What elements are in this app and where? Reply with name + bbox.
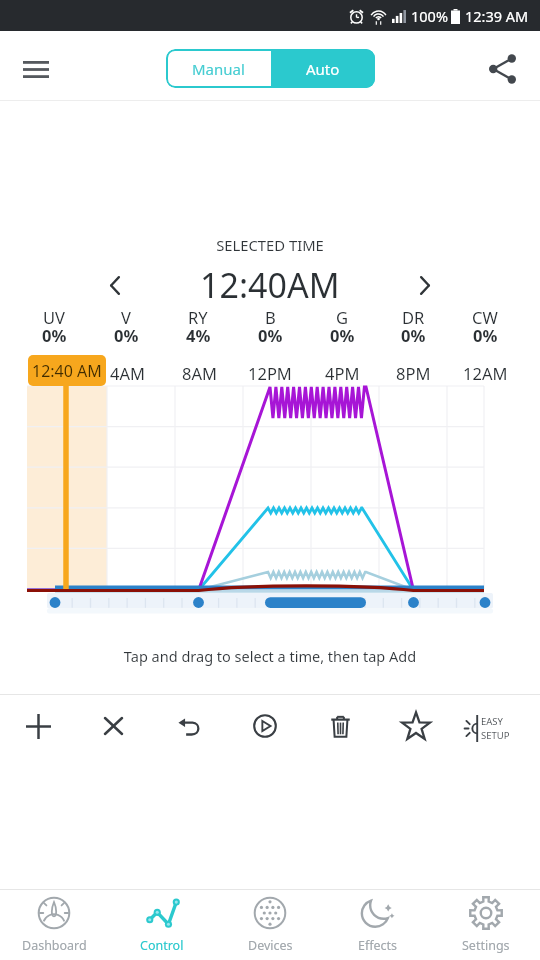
button[interactable]: UV xyxy=(20,306,88,346)
button[interactable]: CW xyxy=(451,306,519,346)
button[interactable]: Share xyxy=(478,45,526,93)
button[interactable]: B xyxy=(236,306,304,346)
button[interactable]: Auto xyxy=(271,49,375,88)
staticText: 4% xyxy=(186,324,211,346)
staticText: 12:40AM xyxy=(200,262,340,308)
button[interactable]: Undo xyxy=(163,700,215,752)
staticText: 12:39 AM xyxy=(465,6,529,26)
staticText: Settings xyxy=(462,937,510,954)
staticText: 0% xyxy=(114,324,139,346)
button[interactable]: G xyxy=(308,306,376,346)
staticText: V xyxy=(121,306,131,328)
staticText: SELECTED TIME xyxy=(0,235,540,255)
staticText: Control xyxy=(140,937,184,954)
staticText: CW xyxy=(472,306,498,328)
button[interactable]: DR xyxy=(379,306,447,346)
button[interactable]: Devices xyxy=(216,890,324,960)
button[interactable]: Easy setup xyxy=(464,703,534,753)
button[interactable]: Settings xyxy=(432,890,540,960)
button[interactable]: V xyxy=(92,306,160,346)
button[interactable]: Next time xyxy=(405,265,445,305)
button[interactable]: Control xyxy=(108,890,216,960)
button[interactable]: Favorite xyxy=(390,700,442,752)
staticText: Dashboard xyxy=(22,937,87,954)
staticText: UV xyxy=(43,306,65,328)
staticText: Auto xyxy=(306,59,340,79)
staticText: G xyxy=(336,306,349,328)
button[interactable]: Delete xyxy=(314,700,366,752)
staticText: B xyxy=(265,306,276,328)
button[interactable]: Close xyxy=(87,700,139,752)
staticText: 4AM xyxy=(110,362,145,384)
button[interactable]: Dashboard xyxy=(0,890,108,960)
staticText: 100% xyxy=(411,6,448,26)
staticText: 12AM xyxy=(463,362,508,384)
button[interactable]: Effects xyxy=(324,890,432,960)
staticText: 0% xyxy=(473,324,498,346)
staticText: 0% xyxy=(330,324,355,346)
staticText: 0% xyxy=(42,324,67,346)
staticText: 0% xyxy=(258,324,283,346)
staticText: SETUP xyxy=(481,729,510,742)
staticText: Tap and drag to select a time, then tap … xyxy=(0,646,540,666)
staticText: Manual xyxy=(192,59,245,79)
button[interactable]: Add xyxy=(12,700,64,752)
staticText: 4PM xyxy=(325,362,360,384)
staticText: 8AM xyxy=(182,362,217,384)
staticText: 12:40 AM xyxy=(32,360,102,382)
staticText: 8PM xyxy=(396,362,431,384)
staticText: Effects xyxy=(358,937,398,954)
staticText: 12PM xyxy=(248,362,292,384)
staticText: EASY xyxy=(481,715,503,728)
button[interactable]: Menu xyxy=(12,45,60,93)
button[interactable]: 12:40 AM xyxy=(28,355,106,386)
button[interactable]: Manual xyxy=(166,49,271,88)
button[interactable]: Previous time xyxy=(95,265,135,305)
staticText: DR xyxy=(402,306,425,328)
button[interactable]: RY xyxy=(164,306,232,346)
staticText: 0% xyxy=(401,324,426,346)
staticText: RY xyxy=(188,306,208,328)
staticText: Devices xyxy=(248,937,293,954)
button[interactable]: Play xyxy=(239,700,291,752)
